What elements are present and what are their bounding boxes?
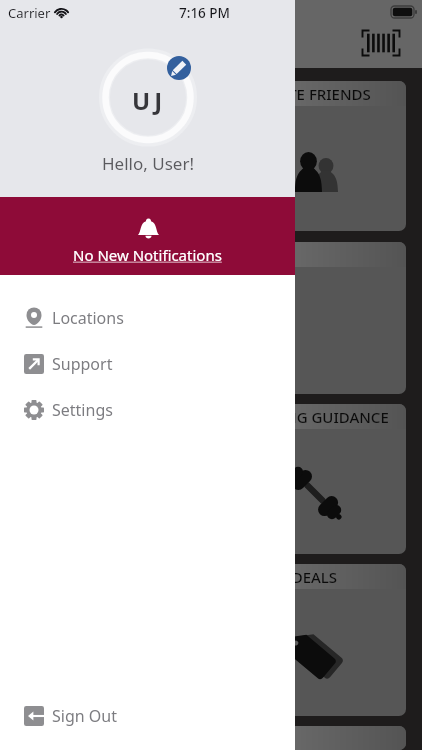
staticText: Settings xyxy=(52,399,113,421)
staticText: Support xyxy=(52,353,113,375)
button[interactable]: Locations xyxy=(0,295,295,341)
staticText: TRAINING GUIDANCE xyxy=(235,407,389,427)
button[interactable]: No New Notifications xyxy=(0,197,295,275)
staticText: 7:16 PM xyxy=(179,4,230,22)
staticText: Sign Out xyxy=(52,705,117,727)
staticText: ACTIVATE FRIENDS xyxy=(238,84,371,104)
button[interactable] xyxy=(16,726,406,750)
staticText: Hello, User! xyxy=(102,152,194,175)
staticText: No New Notifications xyxy=(73,245,222,265)
staticText: EXCLUSIVE DEALS xyxy=(211,567,338,587)
button[interactable]: TRAINING GUIDANCE xyxy=(16,404,406,554)
button[interactable]: EXCLUSIVE DEALS xyxy=(16,564,406,716)
button[interactable]: Edit profile xyxy=(100,50,196,146)
button[interactable]: Scan barcode xyxy=(361,23,401,63)
button[interactable] xyxy=(16,242,406,394)
staticText: Locations xyxy=(52,307,124,329)
button[interactable]: Settings xyxy=(0,387,295,433)
staticText: UJ xyxy=(132,84,167,117)
button[interactable]: Sign Out xyxy=(0,693,295,739)
button[interactable]: Support xyxy=(0,341,295,387)
button[interactable]: ACTIVATE FRIENDS xyxy=(16,81,406,231)
staticText: Carrier xyxy=(8,4,51,22)
